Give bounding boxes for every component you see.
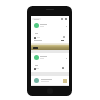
- button[interactable]: Like: [34, 68, 36, 70]
- button[interactable]: [31, 76, 69, 85]
- button[interactable]: More options: [31, 53, 69, 72]
- button[interactable]: More options: [65, 25, 67, 27]
- button[interactable]: More options: [65, 57, 67, 59]
- button[interactable]: More options: [31, 21, 69, 50]
- button[interactable]: Share: [62, 67, 64, 69]
- button[interactable]: Like: [34, 37, 36, 39]
- button[interactable]: Search: [32, 18, 41, 20]
